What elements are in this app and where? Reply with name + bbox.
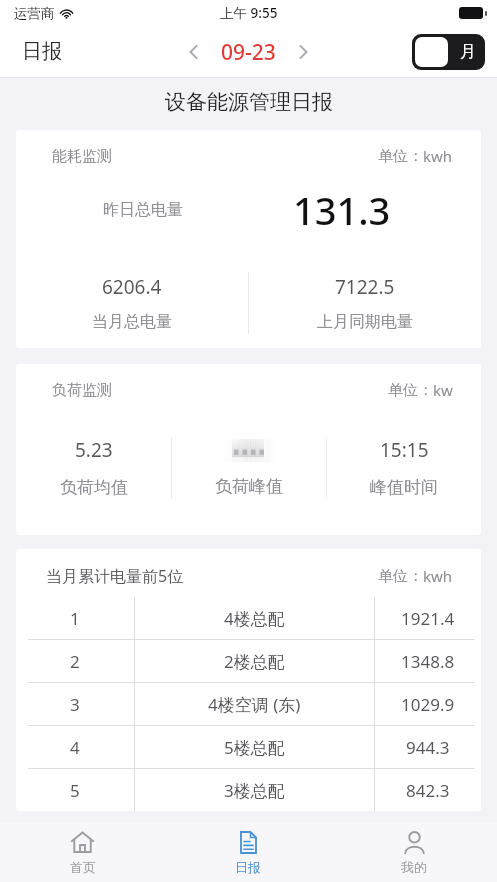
staticText: 3: [70, 693, 80, 716]
staticText: 上午 9:55: [220, 4, 278, 22]
staticText: 4楼总配: [224, 607, 285, 630]
staticText: 月: [460, 42, 476, 62]
staticText: 日报: [22, 39, 62, 64]
staticText: 944.3: [406, 736, 450, 759]
staticText: 2: [70, 650, 80, 673]
staticText: 5楼总配: [224, 736, 285, 759]
staticText: 842.3: [406, 779, 450, 802]
staticText: 1921.4: [401, 607, 455, 630]
button[interactable]: 首页: [0, 822, 165, 882]
staticText: 131.3: [293, 184, 391, 236]
staticText: 峰值时间: [370, 477, 438, 498]
staticText: kwh: [423, 566, 453, 586]
staticText: 昨日总电量: [103, 200, 183, 220]
button[interactable]: 下一天: [286, 35, 320, 69]
staticText: 09-23: [221, 38, 276, 67]
staticText: 当月总电量: [92, 312, 172, 332]
staticText: 1029.9: [401, 693, 455, 716]
staticText: 能耗监测: [52, 147, 112, 166]
staticText: 负荷均值: [60, 477, 128, 498]
staticText: 设备能源管理日报: [165, 89, 333, 115]
staticText: 运营商: [14, 5, 55, 22]
staticText: 1348.8: [401, 650, 455, 673]
staticText: 负荷峰值: [215, 476, 283, 497]
button[interactable]: 5: [16, 769, 481, 811]
button[interactable]: 1: [16, 597, 481, 639]
button[interactable]: 日报: [165, 822, 331, 882]
staticText: 日报: [235, 859, 261, 875]
button[interactable]: 上一天: [177, 35, 211, 69]
staticText: 6206.4: [102, 274, 162, 300]
staticText: 单位：: [378, 147, 423, 166]
staticText: 3楼总配: [224, 779, 285, 802]
staticText: 5.23: [75, 437, 113, 463]
staticText: 7122.5: [335, 274, 395, 300]
staticText: 4楼空调 (东): [208, 693, 301, 716]
button[interactable]: 4: [16, 726, 481, 768]
button[interactable]: 2: [16, 640, 481, 682]
staticText: 上月同期电量: [317, 312, 413, 332]
staticText: 单位：: [388, 381, 433, 400]
button[interactable]: 月: [412, 34, 485, 70]
staticText: kwh: [423, 146, 453, 166]
staticText: 5: [70, 779, 80, 802]
staticText: 15:15: [380, 437, 429, 463]
staticText: 负荷监测: [52, 381, 112, 400]
staticText: 1: [70, 607, 80, 630]
staticText: 当月累计电量前5位: [46, 565, 184, 587]
staticText: 我的: [401, 859, 427, 875]
staticText: 4: [70, 736, 80, 759]
staticText: 首页: [70, 859, 96, 875]
staticText: kw: [433, 380, 453, 400]
staticText: 2楼总配: [224, 650, 285, 673]
staticText: 单位：: [378, 567, 423, 586]
button[interactable]: 3: [16, 683, 481, 725]
button[interactable]: 我的: [331, 822, 497, 882]
